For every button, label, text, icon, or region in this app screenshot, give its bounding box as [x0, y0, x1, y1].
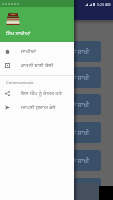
- staticText: ਗੁਰੂ ਨਾਨਕ ਦੇਵ ਜੀ ਦੀਆਂ ਸਾਖੀ: [23, 101, 90, 109]
- button[interactable]: ਗੁਰੂ ਨਾਨਕ ਦੇਵ ਜੀ ਦੀਆਂ ਸਾਖੀ: [12, 178, 101, 199]
- button[interactable]: ਗੁਰੂ ਨਾਨਕ ਦੇਵ ਜੀ ਦੀਆਂ ਸਾਖੀ: [12, 150, 101, 171]
- staticText: ਆਪਣੀ ਸੁਝਾਅ ਭੇਜੋ: [21, 104, 56, 111]
- staticText: ਭਾਵਨੀ ਬਾਣੀ ਬੋਲੀ: [21, 62, 54, 69]
- staticText: ਗੁਰੂ ਨਾਨਕ ਦੇਵ ਜੀ ਦੀਆਂ ਸਾਖੀ: [23, 129, 90, 137]
- staticText: ਗੁਰੂ ਨਾਨਕ ਦੇਵ ਜੀ ਦੀਆਂ ਸਾਖੀ: [23, 74, 90, 82]
- staticText: 5:23 AM: [97, 2, 111, 7]
- staticText: ਗੁਰੂ ਨਾਨਕ ਦੇਵ ਜੀ ਦੀਆਂ ਸਾਖੀ: [23, 48, 90, 56]
- button[interactable]: ਗੁਰੂ ਨਾਨਕ ਦੇਵ ਜੀ ਦੀਆਂ ਸਾਖੀ: [12, 41, 101, 62]
- staticText: ਇਸ ਐਪ ਨੂੰ ਸ਼ੇਅਰ ਕਰੋ: [21, 90, 62, 97]
- staticText: ਗੁਰੂ ਨਾਨਕ ਦੇਵ ਜੀ ਦੀਆਂ ਸਾਖੀ: [23, 157, 90, 165]
- staticText: Communicate: [6, 80, 34, 86]
- staticText: ਗੁਰੂ ਨਾਨਕ ਦੇਵ ਜੀ ਦੀਆਂ ਸਾਖੀ: [23, 185, 90, 193]
- button[interactable]: ਆਪਣੀ ਸੁਝਾਅ ਭੇਜੋ: [0, 100, 74, 114]
- button[interactable]: ਸਾਖੀਆਂ: [0, 44, 74, 58]
- button[interactable]: ਭਾਵਨੀ ਬਾਣੀ ਬੋਲੀ: [0, 58, 74, 72]
- button[interactable]: ਗੁਰੂ ਨਾਨਕ ਦੇਵ ਜੀ ਦੀਆਂ ਸਾਖੀ: [12, 94, 101, 115]
- button[interactable]: ਗੁਰੂ ਨਾਨਕ ਦੇਵ ਜੀ ਦੀਆਂ ਸਾਖੀ: [12, 67, 101, 88]
- button[interactable]: ਇਸ ਐਪ ਨੂੰ ਸ਼ੇਅਰ ਕਰੋ: [0, 86, 74, 100]
- button[interactable]: ਗੁਰੂ ਨਾਨਕ ਦੇਵ ਜੀ ਦੀਆਂ ਸਾਖੀ: [12, 122, 101, 143]
- staticText: ਸਾਖੀਆਂ: [21, 49, 36, 54]
- staticText: ਸਿੱਖ ਸਾਖੀਆਂ: [6, 30, 31, 37]
